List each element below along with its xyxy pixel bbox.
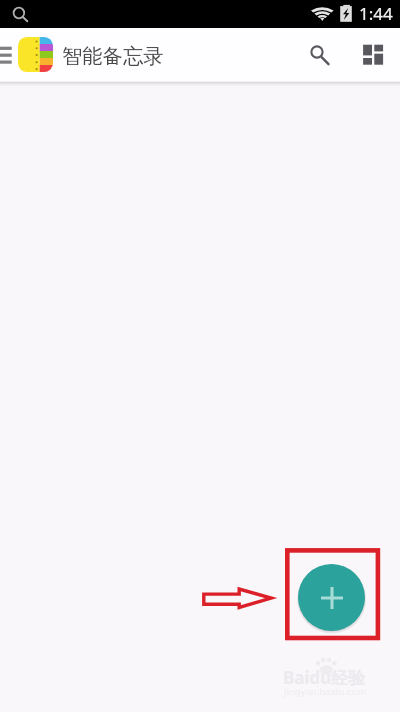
button[interactable]: Search: [295, 31, 341, 79]
staticText: jingyan.baidu.com: [284, 685, 367, 698]
button[interactable]: Grid view: [352, 31, 394, 79]
button[interactable]: Menu: [0, 40, 14, 70]
staticText: 智能备忘录: [62, 43, 164, 69]
staticText: 1:44: [359, 2, 393, 25]
staticText: Baidu经验: [283, 666, 366, 689]
button[interactable]: Search: [0, 0, 40, 28]
button[interactable]: Add note: [298, 564, 365, 631]
